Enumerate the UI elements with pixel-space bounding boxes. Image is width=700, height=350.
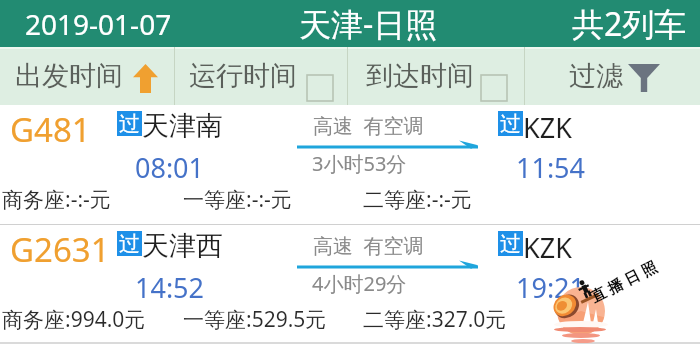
staticText: 过 (500, 111, 521, 136)
staticText: 天津西 (142, 229, 223, 263)
staticText: 共2列车 (572, 2, 687, 46)
staticText: 11:54 (516, 149, 586, 186)
staticText: 运行时间 (189, 59, 297, 93)
staticText: 天津南 (142, 109, 223, 143)
button[interactable]: 过滤 (525, 47, 700, 105)
staticText: 08:01 (135, 149, 205, 186)
staticText: 直播日照 (586, 257, 662, 308)
staticText: 19:21 (516, 269, 586, 306)
staticText: G481 (10, 107, 91, 152)
other: Sort by departure time ascending (133, 64, 158, 93)
staticText: 14:52 (135, 269, 205, 306)
staticText: 高速 有空调 (313, 232, 424, 259)
staticText: 过 (119, 231, 140, 256)
other: Filter (628, 64, 660, 92)
staticText: 商务座:-:-元 (2, 185, 111, 214)
staticText: 一等座:529.5元 (183, 305, 327, 334)
staticText: 二等座:327.0元 (363, 305, 507, 334)
staticText: KZK (523, 109, 572, 146)
staticText: 过 (500, 231, 521, 256)
staticText: 出发时间 (15, 59, 123, 93)
staticText: 3小时53分 (312, 150, 407, 177)
staticText: 高速 有空调 (313, 112, 424, 139)
button[interactable]: 到达时间 (348, 47, 524, 105)
other: Checkbox (481, 75, 507, 101)
staticText: 二等座:-:-元 (363, 185, 472, 214)
staticText: 4小时29分 (312, 270, 407, 297)
staticText: 商务座:994.0元 (2, 305, 146, 334)
staticText: G2631 (10, 227, 110, 272)
staticText: 一等座:-:-元 (183, 185, 292, 214)
staticText: KZK (523, 229, 572, 266)
staticText: 过滤 (569, 59, 623, 93)
button[interactable]: 出发时间 (0, 47, 174, 105)
staticText: 天津-日照 (299, 2, 438, 46)
other: Checkbox (307, 75, 333, 101)
staticText: 到达时间 (366, 59, 474, 93)
button[interactable]: G481 (0, 105, 700, 224)
staticText: 2019-01-07 (25, 5, 172, 43)
button[interactable]: 运行时间 (175, 47, 347, 105)
staticText: 过 (119, 111, 140, 136)
button[interactable]: G2631 (0, 225, 700, 344)
